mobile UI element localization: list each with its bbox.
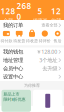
button[interactable]: 5 <box>32 6 48 24</box>
staticText: 待发货 <box>13 39 25 43</box>
button[interactable] <box>33 90 62 112</box>
button[interactable]: 待收货 <box>26 30 38 43</box>
button[interactable]: 地址管理 <box>0 56 64 64</box>
staticText: 限时8折优惠 <box>3 97 25 102</box>
staticText: 128 <box>0 6 15 16</box>
button[interactable]: 查看全部 <box>42 23 61 28</box>
staticText: 为你推荐 <box>24 83 40 88</box>
staticText: 我的订单 <box>3 22 23 29</box>
button[interactable]: 售后 <box>51 30 64 43</box>
button[interactable]: 2680 <box>16 1 32 29</box>
staticText: 售后 <box>54 39 62 43</box>
staticText: 2680 <box>16 1 31 22</box>
button[interactable]: 我的钱包 <box>0 48 64 56</box>
button[interactable]: 新品上市 <box>1 90 31 112</box>
button[interactable]: 设置中心 <box>0 73 64 81</box>
staticText: 积分 <box>19 23 29 29</box>
button[interactable]: 待付款 <box>0 30 13 43</box>
staticText: 余额 <box>3 18 13 24</box>
staticText: 待评价 <box>39 39 51 43</box>
staticText: 5 <box>37 6 42 16</box>
button[interactable]: 待评价 <box>38 30 51 43</box>
staticText: 设置中心 <box>3 73 23 80</box>
staticText: 查看全部 <box>42 23 58 28</box>
staticText: 优惠券 <box>32 18 47 24</box>
button[interactable]: 12 <box>48 6 64 24</box>
staticText: 新品上市 <box>3 92 19 97</box>
button[interactable]: 128 <box>0 6 16 24</box>
staticText: 去升级 <box>42 65 57 72</box>
staticText: 会员中心 <box>3 65 23 72</box>
staticText: 收藏 <box>51 18 61 24</box>
staticText: 我的钱包 <box>3 48 23 55</box>
button[interactable]: 会员中心 <box>0 64 64 73</box>
button[interactable]: 待发货 <box>13 30 26 43</box>
staticText: 12 <box>51 6 61 16</box>
staticText: 待付款 <box>0 39 12 43</box>
staticText: ￥128.00 <box>36 48 57 55</box>
staticText: 3个地址 <box>39 57 57 64</box>
staticText: 待收货 <box>26 39 38 43</box>
staticText: 地址管理 <box>3 57 23 63</box>
